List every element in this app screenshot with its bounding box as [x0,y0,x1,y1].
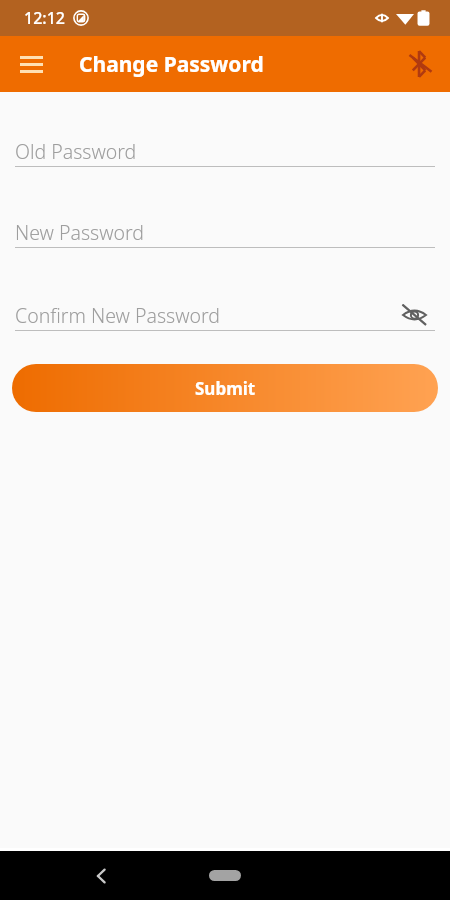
button[interactable]: Toggle password visibility [398,300,430,330]
button[interactable]: Submit [12,364,438,412]
staticText: Change Password [79,50,264,79]
staticText: Submit [195,377,256,400]
staticText: New Password [15,219,144,246]
button[interactable]: Bluetooth disabled [398,42,442,86]
staticText: 12:12 [24,7,65,29]
button[interactable]: Back [79,854,123,898]
staticText: Confirm New Password [15,302,220,329]
staticText: Old Password [15,138,137,165]
button[interactable]: Open navigation menu [9,42,53,86]
